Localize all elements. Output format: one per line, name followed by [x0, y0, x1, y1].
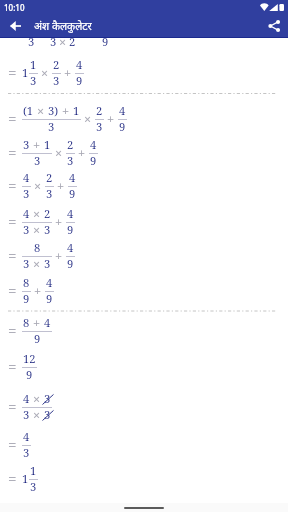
staticText: 3: [34, 153, 41, 168]
staticText: 4: [23, 206, 30, 221]
staticText: 3: [23, 186, 30, 201]
staticText: ×: [33, 255, 41, 272]
button[interactable]: Back: [0, 14, 30, 37]
staticText: 9: [69, 186, 76, 201]
staticText: +: [55, 247, 63, 264]
staticText: (1: [23, 103, 34, 118]
staticText: 1: [30, 57, 37, 72]
staticText: 9: [34, 331, 41, 346]
staticText: +: [33, 314, 41, 331]
staticText: 4: [67, 240, 74, 255]
staticText: =: [8, 62, 17, 83]
staticText: 9: [67, 222, 74, 237]
staticText: 4: [69, 170, 76, 185]
staticText: 1: [44, 137, 51, 152]
staticText: 9: [90, 153, 97, 168]
staticText: 3: [28, 38, 35, 48]
staticText: ×: [33, 221, 41, 238]
staticText: 9: [102, 38, 109, 48]
staticText: =: [8, 280, 17, 301]
staticText: 4: [23, 429, 30, 444]
staticText: 3): [48, 103, 59, 118]
staticText: 3: [53, 73, 60, 88]
staticText: =: [8, 356, 17, 377]
staticText: ×: [84, 110, 92, 127]
button[interactable]: Share: [260, 14, 288, 37]
staticText: +: [64, 64, 72, 81]
staticText: =: [8, 396, 17, 417]
staticText: ×: [59, 38, 67, 48]
staticText: 4: [23, 391, 30, 406]
staticText: 3: [44, 256, 51, 271]
staticText: 9: [23, 291, 30, 306]
staticText: 4: [76, 57, 83, 72]
staticText: =: [8, 142, 17, 163]
staticText: 3: [44, 391, 51, 406]
staticText: 3: [96, 119, 103, 134]
staticText: 1: [22, 65, 29, 80]
staticText: 3: [23, 256, 30, 271]
staticText: +: [33, 136, 41, 153]
staticText: +: [62, 102, 70, 119]
staticText: 3: [46, 186, 53, 201]
staticText: ×: [33, 205, 41, 222]
staticText: 3: [44, 407, 51, 422]
staticText: +: [34, 282, 42, 299]
staticText: 4: [90, 137, 97, 152]
staticText: 3: [44, 222, 51, 237]
staticText: 10:10: [4, 2, 25, 13]
staticText: =: [8, 468, 17, 489]
staticText: 9: [26, 367, 33, 382]
staticText: ×: [41, 64, 49, 81]
staticText: 3: [48, 119, 55, 134]
staticText: 1: [30, 463, 37, 478]
staticText: +: [78, 144, 86, 161]
staticText: 3: [23, 137, 30, 152]
staticText: 2: [67, 137, 74, 152]
staticText: =: [8, 320, 17, 341]
staticText: +: [55, 213, 63, 230]
staticText: अंश कैलकुलेटर: [34, 19, 92, 33]
staticText: 3: [30, 73, 37, 88]
staticText: 4: [67, 206, 74, 221]
staticText: 2: [46, 170, 53, 185]
staticText: 9: [46, 291, 53, 306]
staticText: 4: [23, 170, 30, 185]
staticText: 3: [67, 153, 74, 168]
staticText: ×: [55, 144, 63, 161]
staticText: ×: [33, 390, 41, 407]
staticText: ×: [33, 406, 41, 423]
staticText: 2: [53, 57, 60, 72]
staticText: 8: [34, 240, 41, 255]
staticText: 1: [73, 103, 80, 118]
staticText: 1: [22, 471, 29, 486]
staticText: 3: [23, 445, 30, 460]
staticText: 4: [44, 315, 51, 330]
staticText: 8: [23, 275, 30, 290]
staticText: =: [8, 108, 17, 129]
staticText: 2: [44, 206, 51, 221]
staticText: 3: [50, 38, 57, 48]
staticText: =: [8, 434, 17, 455]
staticText: 3: [23, 407, 30, 422]
staticText: =: [8, 211, 17, 232]
staticText: 9: [67, 256, 74, 271]
staticText: 4: [46, 275, 53, 290]
staticText: 2: [96, 103, 103, 118]
staticText: 4: [119, 103, 126, 118]
staticText: +: [107, 110, 115, 127]
staticText: 2: [69, 38, 76, 48]
staticText: 9: [119, 119, 126, 134]
staticText: +: [57, 177, 65, 194]
staticText: 8: [23, 315, 30, 330]
staticText: 9: [76, 73, 83, 88]
staticText: =: [8, 245, 17, 266]
staticText: =: [8, 175, 17, 196]
staticText: 3: [30, 479, 37, 494]
staticText: 3: [23, 222, 30, 237]
staticText: ×: [37, 102, 45, 119]
staticText: 12: [23, 351, 36, 366]
staticText: ×: [34, 177, 42, 194]
